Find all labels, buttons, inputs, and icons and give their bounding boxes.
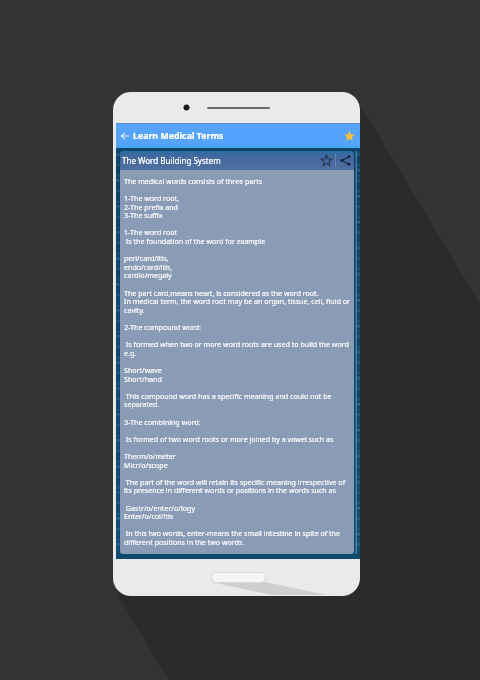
staticText: Micr/o/scope [124, 460, 168, 470]
button[interactable]: Home [212, 573, 265, 582]
staticText: In medical term, the word root may be an… [124, 296, 350, 306]
button[interactable]: Back [116, 123, 133, 148]
staticText: 3-The combining word: [124, 417, 201, 427]
staticText: 1-The word root [124, 227, 178, 237]
staticText: The part card,means heart, is considered… [124, 288, 319, 298]
staticText: peri/card/itis, [124, 253, 169, 263]
staticText: The Word Building System [122, 155, 221, 166]
staticText: its presence in different words or posit… [124, 485, 336, 495]
staticText: 2-The prefix and [124, 202, 178, 212]
staticText: Short/wave [124, 365, 162, 375]
staticText: separated. [124, 399, 160, 409]
staticText: The part of the word will retain its spe… [124, 477, 346, 487]
staticText: This compound word has a specific meanin… [124, 391, 332, 401]
staticText: Is the foundation of the word for exampl… [124, 236, 266, 246]
staticText: Short/hand [124, 374, 162, 384]
button[interactable]: Share [336, 151, 354, 170]
staticText: Is formed when two or more word roots ar… [124, 339, 349, 349]
staticText: endo/card/itis, [124, 262, 173, 272]
staticText: Is formed of two word roots or more join… [124, 434, 334, 444]
staticText: 2-The compound word: [124, 322, 202, 332]
button[interactable]: Bookmark [317, 151, 335, 170]
staticText: 1-The word root, [124, 193, 179, 203]
staticText: Enter/o/col/itis [124, 511, 174, 521]
staticText: cavity. [124, 305, 145, 315]
staticText: In this two words, enter-means the small… [124, 528, 341, 538]
staticText: different positions in the two words. [124, 537, 245, 547]
staticText: Learn Medical Terms [133, 130, 224, 142]
staticText: cardio/megaly [124, 270, 172, 280]
staticText: 3-The suffix [124, 210, 163, 220]
button[interactable]: Favorite [338, 123, 360, 148]
staticText: The medical words consists of three part… [124, 176, 263, 186]
staticText: e.g. [124, 348, 137, 358]
staticText: Therm/o/meter [124, 451, 176, 461]
staticText: Gastr/o/enter/o/logy [124, 503, 195, 513]
